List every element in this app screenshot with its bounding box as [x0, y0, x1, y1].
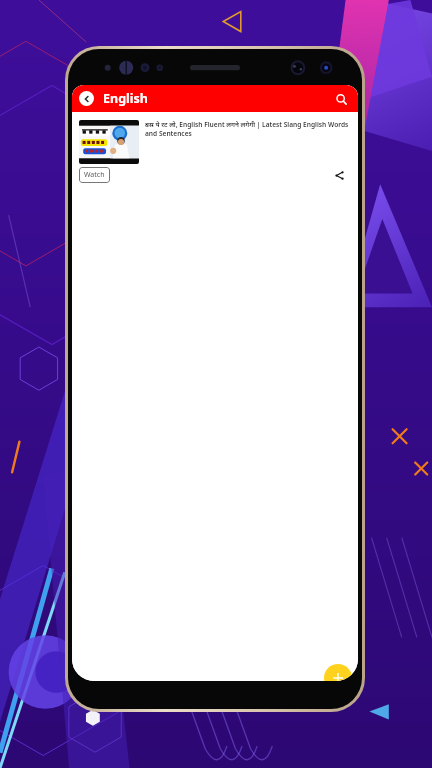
button[interactable]: Add — [324, 664, 352, 681]
button[interactable]: Search — [330, 88, 352, 110]
button[interactable]: Watch — [79, 167, 110, 183]
staticText: बस ये रट लो, English Fluent लगने लगेगी |… — [145, 120, 351, 138]
button[interactable]: Share — [331, 167, 347, 183]
button[interactable]: बस ये रट लो, English Fluent लगने लगेगी |… — [75, 116, 355, 188]
staticText: Watch — [84, 170, 105, 180]
button[interactable]: Back — [79, 91, 94, 106]
staticText: English — [103, 90, 148, 107]
